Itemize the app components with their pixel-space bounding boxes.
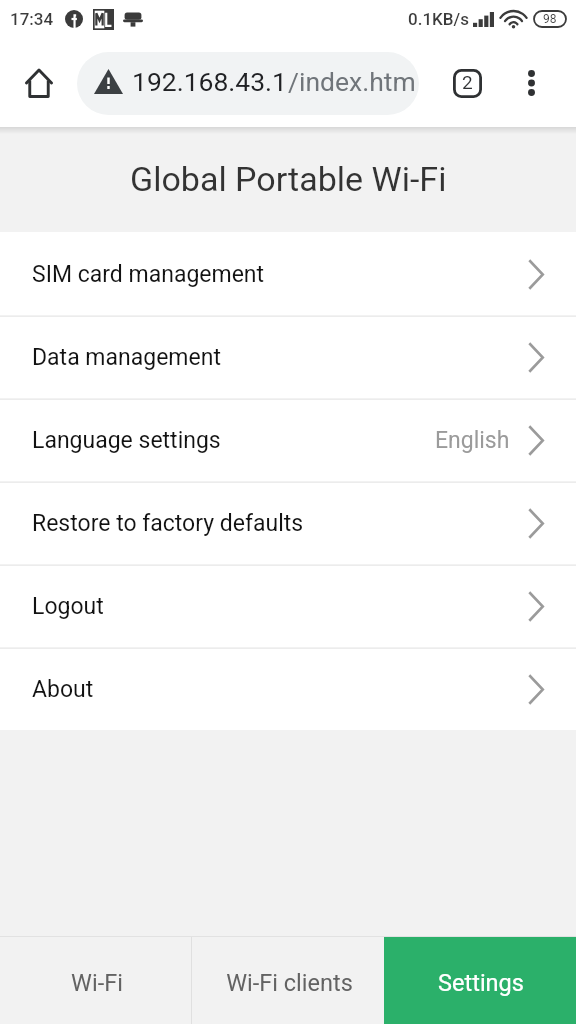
button[interactable]: Language settings — [0, 398, 576, 481]
staticText: 192.168.43.1 — [132, 66, 288, 97]
staticText: SIM card management — [32, 261, 265, 288]
staticText: Language settings — [32, 427, 221, 454]
staticText: Wi-Fi clients — [226, 969, 353, 997]
staticText: Wi-Fi — [71, 969, 123, 997]
button[interactable]: Restore to factory defaults — [0, 481, 576, 564]
staticText: About — [32, 676, 94, 703]
button[interactable]: More options — [507, 59, 556, 108]
staticText: /index.htm — [288, 66, 416, 97]
button[interactable]: Tabs — [443, 59, 492, 108]
button[interactable]: Settings — [384, 937, 576, 1024]
staticText: Data management — [32, 344, 221, 371]
staticText: 0.1KB/s — [408, 9, 469, 29]
button[interactable]: Data management — [0, 315, 576, 398]
staticText: Settings — [438, 969, 524, 997]
button[interactable]: Logout — [0, 564, 576, 647]
button[interactable]: SIM card management — [0, 232, 576, 315]
staticText: Global Portable Wi-Fi — [130, 159, 447, 199]
staticText: 98 — [543, 12, 557, 26]
button[interactable]: Home — [10, 54, 67, 111]
staticText: English — [435, 427, 510, 454]
staticText: 2 — [462, 71, 473, 93]
staticText: Restore to factory defaults — [32, 510, 304, 537]
button[interactable]: Wi-Fi — [0, 937, 192, 1024]
button[interactable]: About — [0, 647, 576, 730]
staticText: 17:34 — [10, 9, 54, 29]
staticText: Logout — [32, 593, 104, 620]
button[interactable]: 192.168.43.1 — [77, 52, 419, 115]
button[interactable]: Wi-Fi clients — [192, 937, 384, 1024]
